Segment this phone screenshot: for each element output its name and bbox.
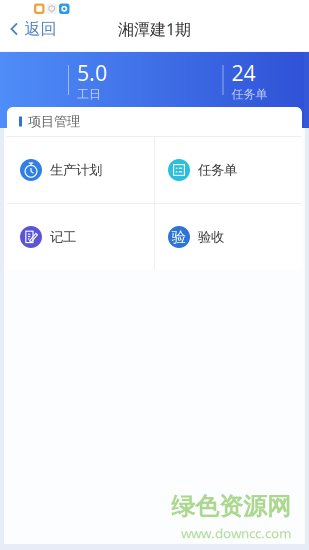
staticText: 记工 [50,229,76,245]
button[interactable]: 生产计划 [7,137,154,203]
button[interactable]: 任务单 [155,137,302,203]
staticText: 生产计划 [50,162,102,178]
staticText: 工日 [77,87,101,101]
staticText: 任务单 [198,162,237,178]
staticText: 5.0 [77,58,107,87]
staticText: 验 [171,228,186,246]
staticText: 验收 [198,229,224,245]
staticText: 项目管理 [28,113,80,130]
button[interactable]: 验 [155,204,302,270]
staticText: 任务单 [231,87,267,101]
staticText: 绿色资源网 [171,492,291,521]
button[interactable]: 记工 [7,204,154,270]
staticText: www.downcc.com [181,524,291,542]
staticText: 返回 [24,19,56,39]
button[interactable]: 返回 [0,14,68,44]
staticText: 湘潭建1期 [118,18,191,40]
staticText: 24 [231,58,255,87]
